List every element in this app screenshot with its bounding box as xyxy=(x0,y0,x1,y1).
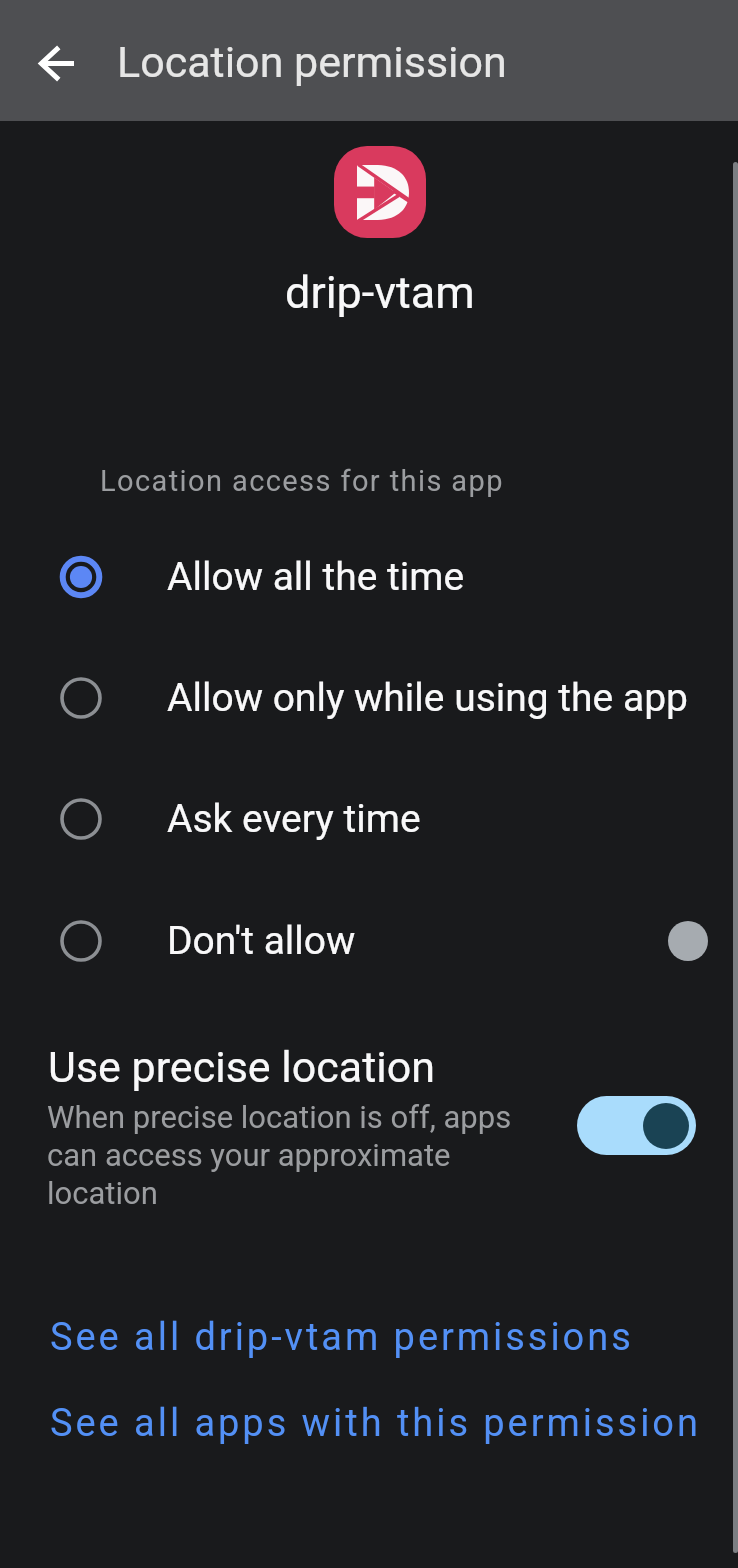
staticText: Don't allow xyxy=(167,918,356,964)
button[interactable]: See all drip-vtam permissions xyxy=(0,1309,738,1371)
staticText: Location permission xyxy=(117,37,507,87)
staticText: Use precise location xyxy=(48,1042,435,1092)
staticText: Allow only while using the app xyxy=(167,675,688,721)
staticText: drip-vtam xyxy=(285,266,475,319)
button[interactable]: See all apps with this permission xyxy=(0,1395,738,1457)
button[interactable]: Use precise location xyxy=(0,1042,738,1212)
button[interactable]: Allow only while using the app xyxy=(0,638,738,758)
button[interactable]: Use precise location toggle xyxy=(577,1096,696,1155)
button[interactable]: Don't allow xyxy=(0,881,738,1001)
button[interactable]: Allow all the time xyxy=(0,517,738,637)
staticText: Ask every time xyxy=(167,796,421,842)
staticText: Location access for this app xyxy=(100,464,504,498)
staticText: When precise location is off, apps can a… xyxy=(47,1099,512,1212)
staticText: See all drip-vtam permissions xyxy=(50,1315,634,1360)
button[interactable]: Back xyxy=(18,25,94,101)
staticText: Allow all the time xyxy=(167,554,465,600)
button[interactable]: Ask every time xyxy=(0,759,738,879)
staticText: See all apps with this permission xyxy=(50,1401,701,1446)
